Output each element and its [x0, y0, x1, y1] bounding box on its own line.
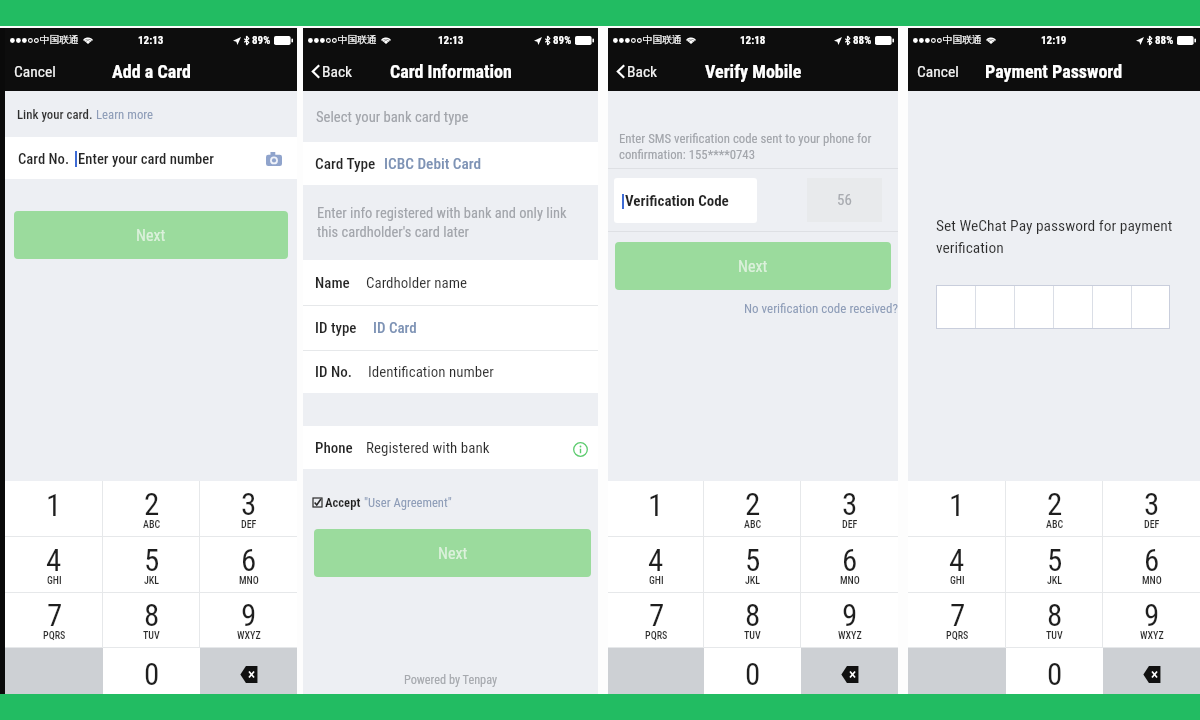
- staticText: 0: [745, 656, 761, 692]
- button[interactable]: 6: [801, 537, 898, 592]
- button[interactable]: 1: [5, 481, 103, 536]
- button[interactable]: 8: [103, 593, 200, 647]
- staticText: Cancel: [917, 63, 959, 81]
- button[interactable]: Delete: [1103, 648, 1200, 694]
- staticText: Enter your card number: [78, 150, 215, 167]
- staticText: 中国联通: [643, 34, 682, 46]
- button[interactable]: Verification Code: [614, 178, 757, 223]
- staticText: PQRS: [946, 630, 969, 642]
- staticText: WXYZ: [1140, 630, 1164, 642]
- button[interactable]: 5: [1006, 537, 1103, 592]
- button[interactable]: 4: [5, 537, 103, 592]
- button[interactable]: Next: [615, 242, 891, 290]
- staticText: Verify Mobile: [705, 61, 802, 82]
- button[interactable]: 0: [1006, 648, 1103, 694]
- staticText: 4: [46, 542, 62, 578]
- button[interactable]: Delete: [801, 648, 898, 694]
- staticText: 7: [47, 597, 63, 633]
- button[interactable]: 3: [1103, 481, 1200, 536]
- button[interactable]: 1: [608, 481, 704, 536]
- button[interactable]: 0: [704, 648, 801, 694]
- staticText: PQRS: [43, 630, 66, 642]
- button[interactable]: Cancel: [5, 52, 66, 91]
- button[interactable]: 9: [200, 593, 297, 647]
- staticText: DEF: [842, 519, 858, 531]
- staticText: 12:19: [1041, 34, 1067, 47]
- button[interactable]: 5: [103, 537, 200, 592]
- staticText: Registered with bank: [366, 439, 490, 457]
- button[interactable]: Name: [303, 260, 598, 305]
- staticText: Learn more: [96, 107, 154, 122]
- staticText: Accept: [325, 495, 361, 510]
- button[interactable]: Cancel: [908, 52, 969, 91]
- staticText: Set WeChat Pay password for payment veri…: [936, 217, 1173, 257]
- button[interactable]: Card Type: [303, 142, 598, 185]
- staticText: 12:13: [138, 34, 164, 47]
- staticText: 9: [241, 597, 257, 633]
- staticText: JKL: [1047, 575, 1063, 587]
- staticText: ICBC Debit Card: [384, 155, 482, 173]
- button[interactable]: 7: [908, 593, 1006, 647]
- staticText: 中国联通: [40, 34, 79, 46]
- staticText: Verification Code: [625, 192, 729, 210]
- staticText: 88%: [1155, 34, 1174, 47]
- button[interactable]: Phone: [303, 426, 598, 469]
- staticText: 中国联通: [338, 34, 377, 46]
- button[interactable]: Password entry: [936, 285, 1170, 329]
- staticText: 4: [648, 542, 664, 578]
- button[interactable]: Back: [303, 52, 363, 91]
- button[interactable]: 2: [704, 481, 801, 536]
- button[interactable]: ID No.: [303, 351, 598, 393]
- button[interactable]: No verification code received?: [744, 301, 898, 316]
- staticText: Powered by Tenpay: [303, 673, 598, 687]
- button[interactable]: 3: [200, 481, 297, 536]
- button[interactable]: ID type: [303, 306, 598, 350]
- staticText: Cardholder name: [366, 274, 468, 292]
- staticText: DEF: [241, 519, 257, 531]
- button[interactable]: 6: [200, 537, 297, 592]
- staticText: GHI: [950, 575, 965, 587]
- button[interactable]: 4: [908, 537, 1006, 592]
- staticText: Link your card.: [17, 107, 93, 122]
- button[interactable]: Back: [608, 52, 668, 91]
- staticText: 9: [842, 597, 858, 633]
- button[interactable]: 9: [1103, 593, 1200, 647]
- button[interactable]: 2: [103, 481, 200, 536]
- button[interactable]: Next: [14, 211, 288, 259]
- button[interactable]: 7: [608, 593, 704, 647]
- staticText: DEF: [1144, 519, 1160, 531]
- button[interactable]: Accept agreement: [313, 495, 452, 510]
- staticText: Phone: [315, 439, 353, 457]
- button[interactable]: 4: [608, 537, 704, 592]
- staticText: ID Card: [373, 319, 417, 337]
- button[interactable]: 7: [5, 593, 103, 647]
- staticText: 0: [1047, 656, 1063, 692]
- button[interactable]: 8: [704, 593, 801, 647]
- button[interactable]: 8: [1006, 593, 1103, 647]
- button[interactable]: Next: [314, 529, 591, 577]
- staticText: Select your bank card type: [316, 108, 469, 125]
- button[interactable]: 3: [801, 481, 898, 536]
- button[interactable]: 6: [1103, 537, 1200, 592]
- staticText: GHI: [47, 575, 62, 587]
- staticText: GHI: [649, 575, 664, 587]
- button[interactable]: Delete: [200, 648, 297, 694]
- staticText: MNO: [840, 575, 860, 587]
- button[interactable]: 56: [807, 178, 882, 222]
- button[interactable]: 5: [704, 537, 801, 592]
- other: Scan card: [266, 152, 282, 166]
- button[interactable]: 1: [908, 481, 1006, 536]
- button[interactable]: 0: [103, 648, 200, 694]
- staticText: ID type: [315, 319, 357, 337]
- button[interactable]: 9: [801, 593, 898, 647]
- button[interactable]: Card No.: [5, 137, 297, 179]
- button[interactable]: 2: [1006, 481, 1103, 536]
- staticText: Identification number: [368, 363, 494, 381]
- staticText: 1: [949, 487, 965, 523]
- staticText: 2: [1047, 486, 1063, 522]
- staticText: 1: [648, 487, 664, 523]
- staticText: JKL: [144, 575, 160, 587]
